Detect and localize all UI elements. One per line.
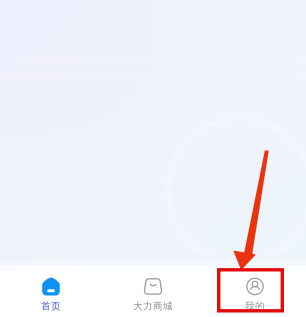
staticText: 我的 — [245, 300, 265, 312]
staticText: 大力商城 — [133, 300, 173, 312]
staticText: 首页 — [41, 300, 61, 312]
button[interactable]: 首页 — [0, 271, 102, 317]
button[interactable]: 大力商城 — [102, 271, 204, 317]
button[interactable]: 我的 — [204, 271, 306, 317]
